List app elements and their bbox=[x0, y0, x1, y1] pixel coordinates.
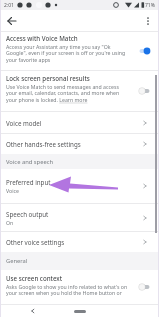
button[interactable]: Lock screen personal results bbox=[0, 71, 159, 111]
staticText: 2:01 bbox=[4, 2, 14, 9]
button[interactable]: Access with Voice Match bbox=[0, 32, 159, 70]
button[interactable]: Home bbox=[74, 310, 86, 313]
staticText: Speech output bbox=[6, 210, 49, 218]
button[interactable]: Speech output bbox=[0, 204, 159, 231]
button[interactable]: Use screen context bbox=[0, 270, 159, 304]
button[interactable]: Back bbox=[3, 12, 21, 30]
button[interactable]: Preferred input bbox=[0, 169, 159, 203]
staticText: Use screen context bbox=[6, 274, 63, 282]
staticText: On bbox=[6, 219, 14, 226]
staticText: Access your Assistant any time you say "… bbox=[6, 43, 126, 64]
staticText: Voice bbox=[6, 187, 19, 194]
staticText: General bbox=[6, 257, 28, 265]
staticText: Voice model bbox=[6, 119, 42, 127]
staticText: Other hands-free settings bbox=[6, 140, 81, 148]
staticText: Preferred input bbox=[6, 178, 51, 186]
button[interactable]: Voice model bbox=[0, 112, 159, 133]
button[interactable]: Back bbox=[27, 305, 39, 317]
staticText: Asks Google to show you info related to … bbox=[6, 283, 128, 297]
staticText: 71% bbox=[145, 2, 155, 9]
button[interactable]: Other hands-free settings bbox=[0, 134, 159, 154]
staticText: Other voice settings bbox=[6, 238, 65, 246]
button[interactable]: Other voice settings bbox=[0, 232, 159, 252]
staticText: Use Voice Match to send messages and acc… bbox=[6, 83, 120, 104]
staticText: Lock screen personal results bbox=[6, 74, 90, 82]
staticText: Access with Voice Match bbox=[6, 34, 78, 42]
staticText: Voice and speech bbox=[6, 158, 54, 166]
button[interactable]: More options bbox=[139, 12, 157, 30]
